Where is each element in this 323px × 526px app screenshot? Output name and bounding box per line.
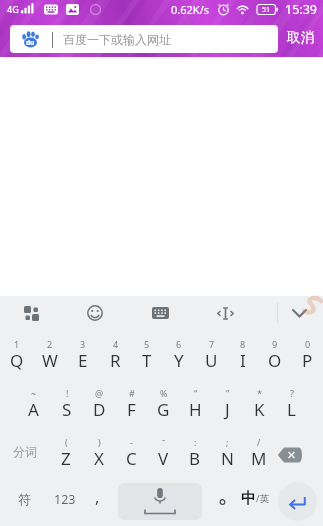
button[interactable]: “ [179, 379, 211, 428]
button[interactable] [0, 296, 62, 330]
staticText: 1 [14, 338, 20, 349]
button[interactable]: 5 [131, 330, 163, 379]
staticText: K [254, 398, 265, 421]
staticText: 123 [54, 491, 76, 508]
button[interactable] [283, 296, 315, 330]
staticText: /英 [256, 492, 270, 505]
button[interactable]: ” [211, 379, 243, 428]
staticText: - [130, 436, 133, 447]
staticText: L [287, 398, 296, 421]
staticText: 7 [209, 338, 215, 349]
staticText: X [94, 447, 104, 470]
button[interactable]: 2 [33, 330, 66, 379]
staticText: 5 [144, 338, 150, 349]
staticText: , [95, 486, 100, 508]
button[interactable]: 4 [99, 330, 131, 379]
staticText: % [160, 387, 168, 398]
staticText: 符 [18, 491, 31, 507]
button[interactable]: 6 [163, 330, 195, 379]
button[interactable]: du [10, 25, 278, 53]
staticText: 4 [113, 338, 119, 349]
button[interactable]: # [115, 379, 147, 428]
button[interactable]: 符 [0, 477, 49, 526]
button[interactable]: / [243, 428, 275, 477]
staticText: H [189, 398, 202, 421]
button[interactable]: 取消 [278, 18, 323, 57]
staticText: du [26, 38, 35, 47]
staticText: ” [226, 387, 230, 398]
staticText: ? [290, 387, 294, 398]
button[interactable]: 0 [291, 330, 323, 379]
button[interactable]: ! [50, 379, 83, 428]
staticText: 0.62K/s [171, 2, 209, 17]
button[interactable]: ) [82, 428, 115, 477]
staticText: J [225, 398, 230, 421]
button[interactable] [207, 477, 239, 526]
staticText: 0 [305, 338, 311, 349]
staticText: 2 [47, 338, 53, 349]
staticText: Z [61, 447, 71, 470]
button[interactable]: 8 [227, 330, 259, 379]
staticText: I [240, 349, 246, 372]
staticText: 6 [176, 338, 182, 349]
button[interactable]: 分词 [0, 428, 49, 477]
button[interactable]: ~ [17, 379, 50, 428]
staticText: A [28, 398, 39, 421]
staticText: 中 [241, 489, 256, 508]
staticText: Q [10, 349, 24, 372]
button[interactable] [118, 483, 202, 520]
button[interactable]: @ [83, 379, 115, 428]
button[interactable]: 中 [239, 477, 271, 526]
staticText: ( [65, 436, 68, 447]
staticText: W [42, 349, 58, 372]
staticText: S [62, 398, 72, 421]
button[interactable] [193, 296, 257, 330]
staticText: 取消 [287, 29, 314, 46]
staticText: V [158, 447, 169, 470]
staticText: 百度一下或输入网址 [63, 32, 171, 47]
button[interactable]: % [147, 379, 179, 428]
staticText: N [221, 447, 234, 470]
staticText: : [194, 436, 197, 447]
button[interactable]: : [179, 428, 211, 477]
staticText: F [127, 398, 136, 421]
staticText: 4G [7, 3, 19, 15]
button[interactable]: 1 [0, 330, 33, 379]
button[interactable] [275, 428, 323, 477]
button[interactable]: ˉ [147, 428, 179, 477]
staticText: R [110, 349, 121, 372]
staticText: 3 [80, 338, 86, 349]
button[interactable]: 123 [49, 477, 81, 526]
staticText: / [257, 436, 261, 447]
staticText: ~ [31, 387, 37, 398]
staticText: “ [194, 387, 198, 398]
button[interactable]: 7 [195, 330, 227, 379]
staticText: ˉ [162, 436, 166, 447]
button[interactable]: ? [275, 379, 307, 428]
button[interactable] [62, 296, 128, 330]
staticText: O [268, 349, 282, 372]
staticText: ; [226, 436, 229, 447]
staticText: P [302, 349, 313, 372]
staticText: 15:39 [285, 1, 317, 18]
button[interactable] [128, 296, 193, 330]
staticText: 8 [240, 338, 246, 349]
staticText: D [93, 398, 106, 421]
staticText: * [257, 387, 262, 398]
button[interactable]: 9 [259, 330, 291, 379]
button[interactable]: - [115, 428, 147, 477]
staticText: U [205, 349, 218, 372]
button[interactable] [271, 477, 323, 526]
button[interactable]: * [243, 379, 275, 428]
button[interactable]: 3 [66, 330, 99, 379]
button[interactable]: , [81, 477, 113, 526]
staticText: Y [174, 349, 184, 372]
staticText: B [189, 447, 201, 470]
button[interactable]: ; [211, 428, 243, 477]
staticText: ! [66, 387, 69, 398]
staticText: @ [95, 387, 104, 398]
staticText: ) [98, 436, 101, 447]
staticText: E [78, 349, 88, 372]
staticText: 51 [262, 5, 271, 15]
button[interactable]: ( [49, 428, 82, 477]
